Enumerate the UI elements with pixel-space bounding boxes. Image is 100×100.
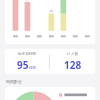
staticText: 総学習時間 bbox=[18, 52, 36, 57]
staticText: 時間配分 bbox=[6, 79, 22, 84]
button[interactable]: Time allocation pie chart bbox=[5, 87, 95, 100]
button[interactable]: ログ数 bbox=[50, 49, 95, 74]
staticText: 95 bbox=[17, 58, 29, 72]
staticText: 128 bbox=[64, 58, 82, 72]
staticText: ログ数 bbox=[67, 52, 78, 57]
staticText: 時間 bbox=[29, 66, 37, 71]
other: Weekly study time bar chart bbox=[5, 0, 95, 44]
button[interactable]: Weekly study time bar chart bbox=[5, 0, 95, 44]
other: Time allocation pie chart bbox=[5, 87, 95, 100]
button[interactable]: 総学習時間 bbox=[5, 49, 49, 74]
